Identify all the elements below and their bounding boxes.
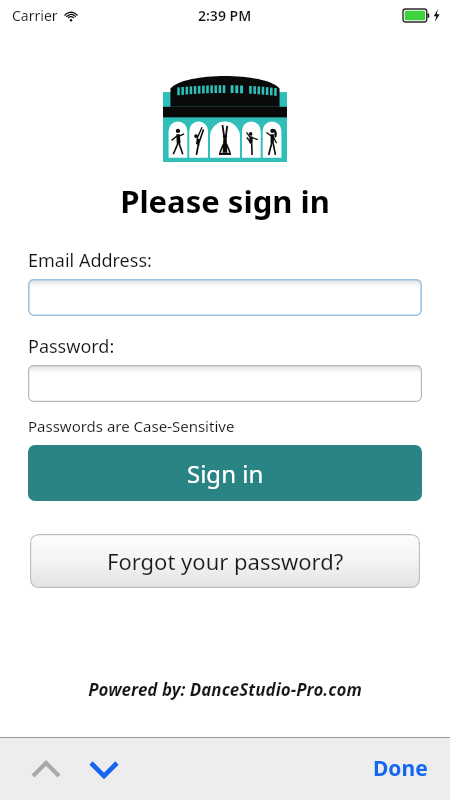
staticText: Powered by: DanceStudio-Pro.com [0, 678, 450, 701]
button[interactable]: Forgot your password? [30, 534, 420, 588]
staticText: Please sign in [0, 180, 450, 222]
staticText: Email Address: [28, 248, 152, 273]
button[interactable]: Sign in [28, 445, 422, 501]
staticText: Sign in [187, 457, 264, 490]
button[interactable]: Done [365, 744, 436, 793]
button[interactable] [28, 279, 422, 316]
staticText: Passwords are Case-Sensitive [28, 416, 235, 436]
staticText: 2:39 PM [198, 6, 252, 25]
staticText: Carrier [12, 6, 58, 25]
staticText: Password: [28, 334, 115, 359]
button[interactable] [28, 365, 422, 402]
button[interactable]: Next field [78, 743, 130, 795]
staticText: Forgot your password? [107, 546, 344, 576]
staticText: Done [373, 754, 428, 783]
button[interactable]: Previous field [20, 743, 72, 795]
